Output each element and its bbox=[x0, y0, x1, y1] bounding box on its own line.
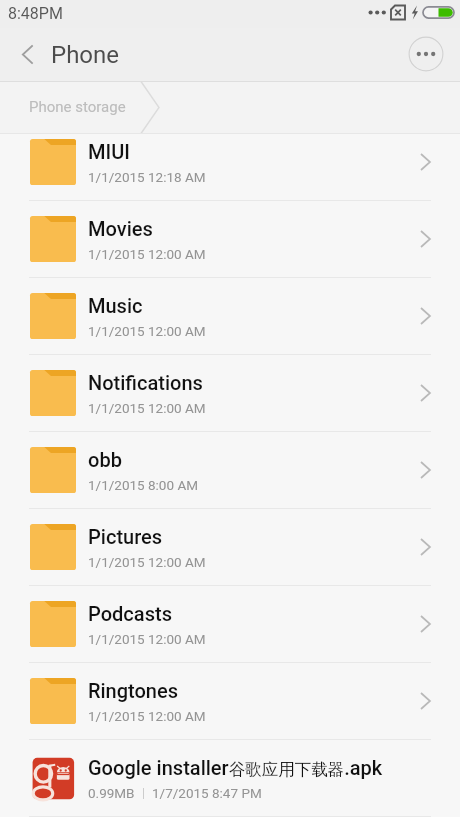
staticText: 1/1/2015 12:00 AM bbox=[88, 323, 206, 339]
staticText: Movies bbox=[88, 217, 153, 240]
staticText: 8:48PM bbox=[8, 4, 63, 23]
staticText: Ringtones bbox=[88, 679, 179, 702]
button[interactable]: obb bbox=[0, 432, 460, 508]
button[interactable]: More options bbox=[406, 34, 446, 74]
staticText: Google installer谷歌应用下载器.apk bbox=[88, 756, 383, 779]
staticText: 1/7/2015 8:47 PM bbox=[152, 785, 262, 801]
staticText: Notifications bbox=[88, 371, 203, 394]
button[interactable]: Movies bbox=[0, 201, 460, 277]
staticText: 1/1/2015 12:00 AM bbox=[88, 554, 206, 570]
staticText: obb bbox=[88, 448, 122, 471]
button[interactable]: Podcasts bbox=[0, 586, 460, 662]
button[interactable]: Pictures bbox=[0, 509, 460, 585]
staticText: 1/1/2015 8:00 AM bbox=[88, 477, 198, 493]
staticText: Phone bbox=[51, 41, 120, 69]
button[interactable]: Back bbox=[0, 28, 46, 82]
staticText: 1/1/2015 12:18 AM bbox=[88, 169, 206, 185]
staticText: 0.99MB bbox=[88, 785, 135, 801]
button[interactable]: Notifications bbox=[0, 355, 460, 431]
staticText: Podcasts bbox=[88, 602, 172, 625]
staticText: 1/1/2015 12:00 AM bbox=[88, 631, 206, 647]
staticText: Pictures bbox=[88, 525, 163, 548]
button[interactable]: MIUI bbox=[0, 124, 460, 200]
button[interactable]: Music bbox=[0, 278, 460, 354]
staticText: MIUI bbox=[88, 140, 130, 163]
staticText: 1/1/2015 12:00 AM bbox=[88, 246, 206, 262]
staticText: 1/1/2015 12:00 AM bbox=[88, 400, 206, 416]
button[interactable]: Google installer谷歌应用下载器.apk bbox=[0, 740, 460, 816]
staticText: Music bbox=[88, 294, 143, 317]
button[interactable]: Ringtones bbox=[0, 663, 460, 739]
staticText: Phone storage bbox=[29, 98, 126, 116]
staticText: 1/1/2015 12:00 AM bbox=[88, 708, 206, 724]
